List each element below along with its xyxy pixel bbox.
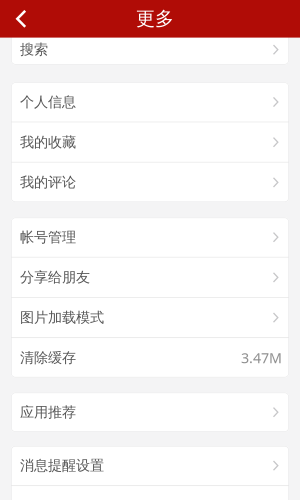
staticText: 我的收藏 bbox=[20, 133, 76, 151]
staticText: 帐号管理 bbox=[20, 228, 76, 246]
staticText: 分享给朋友 bbox=[20, 268, 90, 286]
staticText: 3.47M bbox=[241, 348, 282, 367]
button[interactable]: 清除缓存 bbox=[11, 338, 289, 377]
staticText: 搜索 bbox=[20, 41, 48, 58]
staticText: 我的评论 bbox=[20, 173, 76, 191]
staticText: 清除缓存 bbox=[20, 349, 76, 367]
button[interactable]: 图片加载模式 bbox=[11, 298, 289, 337]
staticText: 消息提醒设置 bbox=[20, 457, 104, 474]
button[interactable]: 搜索 bbox=[11, 25, 289, 65]
button[interactable]: 分享给朋友 bbox=[11, 258, 289, 297]
button[interactable]: 我的评论 bbox=[11, 163, 289, 202]
staticText: 应用推荐 bbox=[20, 403, 76, 421]
button[interactable]: 消息提醒设置 bbox=[11, 446, 289, 485]
button[interactable]: Back bbox=[0, 0, 40, 38]
staticText: 个人信息 bbox=[20, 93, 76, 111]
button[interactable]: 帐号管理 bbox=[11, 217, 289, 257]
button[interactable]: 我的收藏 bbox=[11, 122, 289, 162]
button[interactable]: 个人信息 bbox=[11, 82, 289, 122]
staticText: 更多 bbox=[136, 7, 174, 31]
button[interactable]: 应用推荐 bbox=[11, 392, 289, 432]
staticText: 图片加载模式 bbox=[20, 309, 104, 326]
